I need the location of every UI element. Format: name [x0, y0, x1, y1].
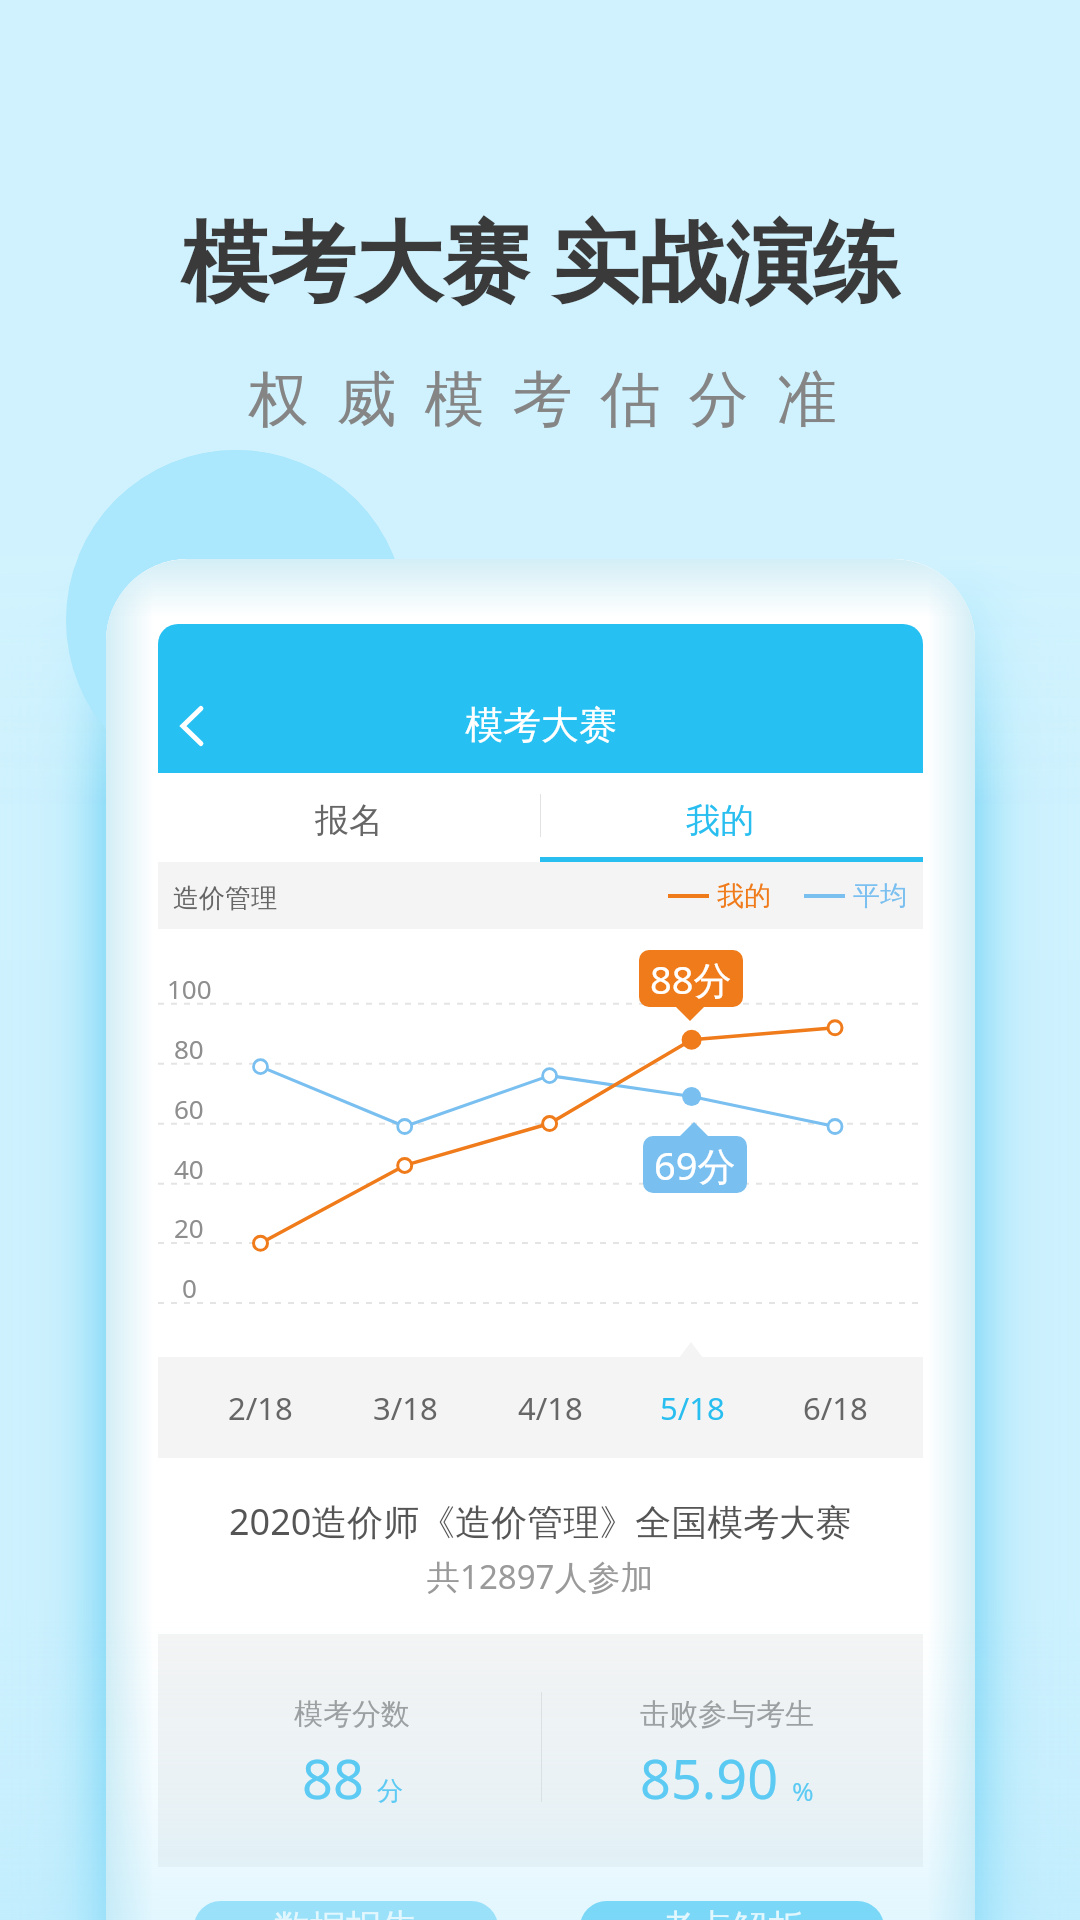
button[interactable]: 3/18 — [343, 1357, 467, 1458]
staticText: 报名 — [315, 799, 383, 842]
staticText: 69分 — [654, 1139, 736, 1191]
staticText: 88 — [302, 1741, 364, 1815]
staticText: 我的 — [686, 799, 754, 842]
button[interactable]: 5/18 — [630, 1357, 754, 1458]
staticText: 0 — [182, 1270, 197, 1305]
button[interactable]: 报名 — [158, 773, 540, 862]
staticText: 85.90 — [640, 1741, 779, 1815]
button[interactable]: 2/18 — [198, 1357, 322, 1458]
button[interactable]: 数据报告 — [194, 1901, 498, 1920]
staticText: 分 — [377, 1775, 403, 1808]
staticText: 88分 — [650, 953, 732, 1005]
button[interactable]: 我的 — [541, 773, 923, 862]
staticText: 80 — [174, 1031, 204, 1066]
staticText: 造价管理 — [173, 882, 277, 915]
button[interactable]: 6/18 — [773, 1357, 897, 1458]
button[interactable]: 4/18 — [488, 1357, 612, 1458]
staticText: 模考大赛 实战演练 — [181, 200, 900, 319]
staticText: 20 — [174, 1210, 204, 1245]
staticText: 击败参与考生 — [640, 1696, 814, 1733]
staticText: 我的 — [717, 879, 771, 913]
staticText: % — [792, 1773, 814, 1808]
staticText: 考点解析 — [660, 1905, 804, 1920]
staticText: 2020造价师《造价管理》全国模考大赛 — [229, 1497, 852, 1546]
staticText: 4/18 — [518, 1387, 583, 1429]
button[interactable]: Back — [164, 690, 244, 762]
button[interactable]: 考点解析 — [580, 1901, 884, 1920]
staticText: 40 — [174, 1151, 204, 1186]
staticText: 5/18 — [660, 1387, 725, 1429]
staticText: 100 — [167, 971, 212, 1006]
staticText: 平均 — [853, 879, 907, 913]
staticText: 60 — [174, 1091, 204, 1126]
staticText: 2/18 — [228, 1387, 293, 1429]
staticText: 模考大赛 — [465, 701, 617, 749]
staticText: 6/18 — [803, 1387, 868, 1429]
staticText: 权 威 模 考 估 分 准 — [248, 356, 843, 438]
staticText: 数据报告 — [274, 1905, 418, 1920]
staticText: 3/18 — [373, 1387, 438, 1429]
staticText: 共12897人参加 — [427, 1554, 654, 1599]
staticText: 模考分数 — [294, 1696, 410, 1733]
